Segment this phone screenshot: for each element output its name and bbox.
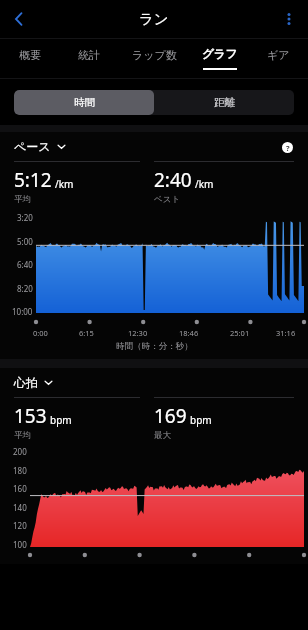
button[interactable]: Back: [0, 0, 38, 38]
button[interactable]: 心拍: [14, 375, 53, 390]
staticText: ラップ数: [132, 48, 177, 62]
staticText: 120: [13, 520, 27, 531]
staticText: 10:00: [12, 306, 33, 317]
button[interactable]: ギア: [249, 39, 308, 78]
staticText: 時間（時：分：秒）: [116, 341, 193, 352]
staticText: 153: [14, 403, 47, 429]
staticText: bpm: [50, 413, 72, 427]
staticText: 160: [13, 483, 27, 494]
staticText: 18:46: [179, 328, 199, 338]
staticText: 200: [13, 446, 27, 457]
staticText: 8:20: [17, 283, 33, 294]
staticText: 平均: [14, 194, 31, 205]
staticText: ?: [286, 143, 290, 153]
staticText: /km: [195, 177, 214, 191]
staticText: 180: [13, 465, 27, 476]
staticText: 6:15: [79, 328, 94, 338]
staticText: 12:30: [128, 328, 148, 338]
staticText: 心拍: [14, 375, 38, 390]
staticText: ギア: [267, 48, 290, 62]
button[interactable]: 統計: [59, 39, 118, 78]
staticText: 0:00: [33, 328, 48, 338]
staticText: /km: [55, 177, 74, 191]
button[interactable]: グラフ: [190, 39, 249, 78]
button[interactable]: 時間: [14, 90, 154, 115]
staticText: 2:40: [154, 167, 192, 193]
staticText: 距離: [214, 96, 235, 109]
staticText: ベスト: [154, 194, 181, 205]
staticText: 100: [13, 539, 27, 550]
button[interactable]: 概要: [0, 39, 59, 78]
button[interactable]: ラップ数: [118, 39, 190, 78]
staticText: 時間: [74, 96, 95, 109]
staticText: 5:12: [14, 167, 52, 193]
staticText: 5:00: [17, 236, 33, 247]
staticText: 3:20: [17, 212, 33, 223]
staticText: 31:16: [276, 328, 296, 338]
button[interactable]: Help: [276, 136, 298, 158]
staticText: bpm: [190, 413, 212, 427]
staticText: グラフ: [202, 47, 238, 61]
staticText: 6:40: [17, 259, 33, 270]
staticText: 169: [154, 403, 187, 429]
staticText: 140: [13, 502, 27, 513]
button[interactable]: ペース: [14, 139, 66, 154]
staticText: 統計: [78, 48, 100, 62]
staticText: ラン: [139, 10, 169, 28]
staticText: ペース: [14, 139, 51, 154]
button[interactable]: 距離: [154, 90, 294, 115]
staticText: 平均: [14, 430, 31, 441]
staticText: 25:01: [230, 328, 250, 338]
staticText: 最大: [154, 430, 171, 441]
staticText: 概要: [19, 48, 41, 62]
button[interactable]: More options: [270, 0, 308, 38]
